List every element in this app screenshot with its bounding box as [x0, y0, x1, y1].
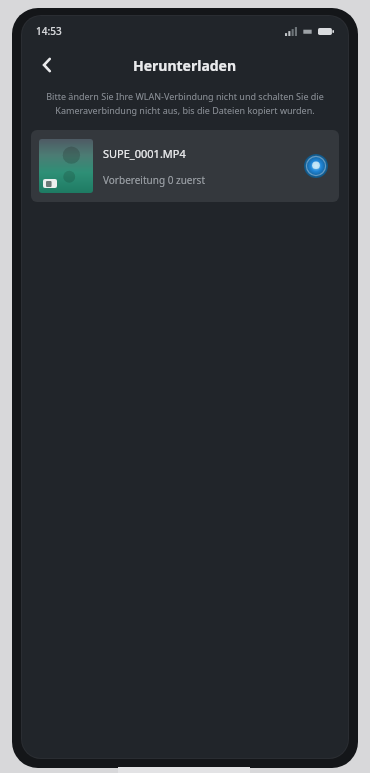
staticText: Bitte ändern Sie Ihre WLAN-Verbindung ni…	[36, 90, 334, 117]
button[interactable]: Download läuft	[301, 151, 331, 181]
button[interactable]: SUPE_0001.MP4	[31, 130, 339, 202]
staticText: SUPE_0001.MP4	[103, 146, 186, 161]
staticText: Herunterladen	[133, 56, 237, 75]
staticText: Vorbereitung 0 zuerst	[103, 173, 206, 187]
staticText: 14:53	[36, 24, 62, 38]
button[interactable]: Zurück	[30, 48, 64, 82]
